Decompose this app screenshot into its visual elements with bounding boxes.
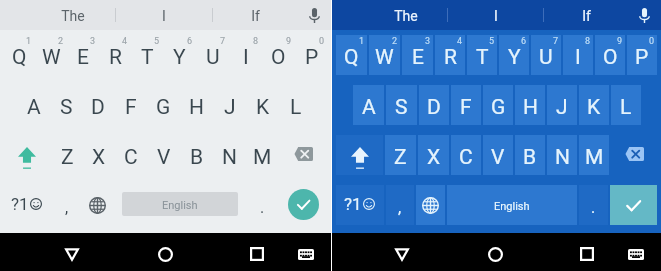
button[interactable]: Voice input: [628, 0, 661, 30]
button[interactable]: L: [611, 85, 641, 125]
button[interactable]: I: [116, 0, 212, 30]
button[interactable]: Change language: [82, 185, 112, 225]
staticText: E: [412, 45, 424, 70]
button[interactable]: A: [19, 85, 49, 125]
button[interactable]: Enter: [610, 185, 657, 225]
button[interactable]: Switch keyboard: [291, 235, 321, 271]
button[interactable]: N: [214, 135, 245, 175]
button[interactable]: ,: [53, 185, 80, 225]
button[interactable]: V: [148, 135, 179, 175]
button[interactable]: Backspace: [280, 135, 327, 175]
button[interactable]: Recents: [242, 235, 272, 271]
button[interactable]: X: [84, 135, 114, 175]
button[interactable]: .: [247, 185, 277, 225]
button[interactable]: F: [115, 85, 146, 125]
button[interactable]: M: [579, 135, 609, 175]
button[interactable]: W: [369, 35, 400, 75]
button[interactable]: D: [419, 85, 449, 125]
button[interactable]: F: [451, 85, 481, 125]
button[interactable]: A: [353, 85, 384, 125]
staticText: If: [582, 8, 591, 24]
staticText: 4: [122, 36, 128, 47]
button[interactable]: Home: [150, 235, 180, 271]
button[interactable]: I: [230, 35, 261, 75]
button[interactable]: Backspace: [611, 135, 657, 175]
button[interactable]: Shift: [4, 135, 50, 175]
button[interactable]: Q: [4, 35, 34, 75]
button[interactable]: M: [247, 135, 278, 175]
button[interactable]: U: [197, 35, 228, 75]
button[interactable]: H: [181, 85, 212, 125]
button[interactable]: Y: [164, 35, 195, 75]
button[interactable]: Symbols: [4, 185, 51, 225]
staticText: K: [256, 95, 270, 120]
button[interactable]: B: [515, 135, 545, 175]
button[interactable]: Voice input: [298, 0, 331, 30]
button[interactable]: Shift: [336, 135, 383, 175]
button[interactable]: S: [386, 85, 417, 125]
staticText: 3: [425, 36, 431, 47]
staticText: 7: [220, 36, 226, 47]
button[interactable]: G: [148, 85, 179, 125]
staticText: 4: [457, 36, 463, 47]
button[interactable]: S: [51, 85, 81, 125]
button[interactable]: Z: [385, 135, 416, 175]
button[interactable]: Change language: [416, 185, 445, 225]
button[interactable]: G: [483, 85, 513, 125]
button[interactable]: X: [418, 135, 449, 175]
button[interactable]: Symbols: [336, 185, 384, 225]
button[interactable]: H: [515, 85, 545, 125]
staticText: I: [494, 8, 498, 24]
button[interactable]: ,: [386, 185, 414, 225]
staticText: U: [539, 45, 553, 70]
button[interactable]: Back: [387, 235, 417, 271]
button[interactable]: B: [181, 135, 212, 175]
button[interactable]: Home: [480, 235, 510, 271]
button[interactable]: Enter: [288, 189, 319, 220]
button[interactable]: E: [68, 35, 98, 75]
button[interactable]: P: [627, 35, 657, 75]
staticText: R: [109, 45, 122, 70]
button[interactable]: English: [122, 192, 238, 216]
button[interactable]: I: [448, 0, 543, 30]
button[interactable]: J: [547, 85, 577, 125]
button[interactable]: If: [213, 0, 298, 30]
button[interactable]: U: [531, 35, 561, 75]
button[interactable]: The: [31, 0, 115, 30]
staticText: 9: [617, 36, 623, 47]
button[interactable]: K: [247, 85, 278, 125]
button[interactable]: E: [402, 35, 433, 75]
button[interactable]: Back: [57, 235, 87, 271]
button[interactable]: .: [579, 185, 608, 225]
button[interactable]: Y: [499, 35, 529, 75]
button[interactable]: D: [83, 85, 113, 125]
staticText: O: [603, 45, 618, 70]
button[interactable]: N: [547, 135, 577, 175]
button[interactable]: P: [296, 35, 327, 75]
button[interactable]: The: [364, 0, 447, 30]
button[interactable]: If: [544, 0, 628, 30]
staticText: 5: [154, 36, 160, 47]
button[interactable]: K: [579, 85, 609, 125]
button[interactable]: O: [595, 35, 625, 75]
button[interactable]: L: [280, 85, 311, 125]
staticText: 6: [521, 36, 527, 47]
button[interactable]: W: [36, 35, 66, 75]
button[interactable]: I: [563, 35, 593, 75]
button[interactable]: J: [214, 85, 245, 125]
staticText: 0: [649, 36, 655, 47]
button[interactable]: Q: [336, 35, 367, 75]
button[interactable]: T: [467, 35, 497, 75]
staticText: 0: [319, 36, 325, 47]
button[interactable]: C: [451, 135, 481, 175]
button[interactable]: English: [447, 185, 577, 225]
button[interactable]: C: [116, 135, 146, 175]
button[interactable]: V: [483, 135, 513, 175]
button[interactable]: Z: [52, 135, 82, 175]
button[interactable]: Switch keyboard: [621, 235, 651, 271]
button[interactable]: R: [435, 35, 465, 75]
button[interactable]: R: [100, 35, 130, 75]
button[interactable]: O: [263, 35, 294, 75]
button[interactable]: Recents: [572, 235, 602, 271]
button[interactable]: T: [132, 35, 162, 75]
